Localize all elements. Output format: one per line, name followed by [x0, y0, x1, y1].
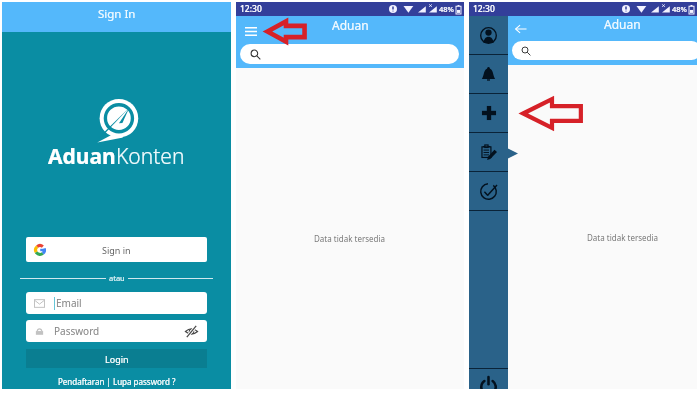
button[interactable]: Password: [26, 320, 207, 342]
button[interactable]: Email: [26, 292, 207, 314]
button[interactable]: Notifications: [469, 55, 508, 93]
staticText: Password: [54, 324, 100, 338]
staticText: 48%: [672, 4, 687, 14]
button[interactable]: Status: [469, 172, 508, 210]
staticText: Konten: [116, 142, 185, 171]
staticText: Sign In: [98, 6, 136, 22]
button[interactable]: Open navigation menu: [240, 20, 262, 42]
button[interactable]: Sign in: [26, 237, 207, 262]
button[interactable]: Login: [26, 349, 207, 368]
staticText: 12:30: [473, 3, 495, 15]
button[interactable]: [240, 44, 459, 64]
staticText: Aduan: [48, 142, 116, 171]
button[interactable]: Log out: [469, 369, 508, 389]
button[interactable]: Back: [511, 19, 531, 39]
button[interactable]: Edit report: [469, 133, 508, 171]
button[interactable]: Pendaftaran | Lupa password ?: [2, 374, 231, 388]
staticText: Pendaftaran | Lupa password ?: [58, 376, 176, 387]
staticText: 12:30: [240, 3, 262, 15]
staticText: 48%: [439, 4, 454, 14]
staticText: Email: [56, 296, 82, 310]
staticText: Aduan: [604, 16, 641, 32]
button[interactable]: Profile: [469, 16, 508, 54]
staticText: Login: [105, 353, 129, 365]
button[interactable]: [512, 41, 697, 60]
button[interactable]: Add: [469, 94, 508, 132]
staticText: Data tidak tersedia: [314, 233, 386, 244]
staticText: Sign in: [102, 244, 131, 256]
staticText: Data tidak tersedia: [587, 232, 659, 243]
staticText: atau: [109, 273, 125, 283]
staticText: Aduan: [332, 17, 369, 33]
